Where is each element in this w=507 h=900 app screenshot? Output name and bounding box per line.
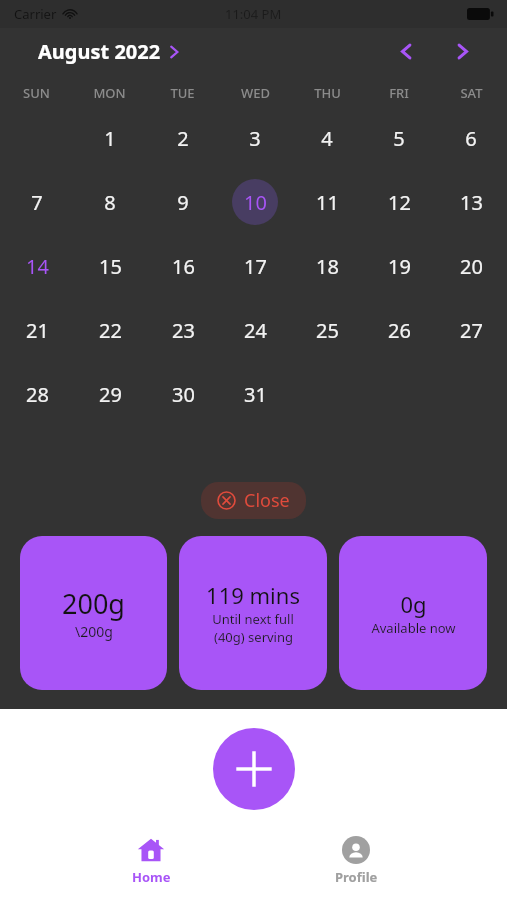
- staticText: 5: [393, 125, 405, 152]
- staticText: TUE: [170, 84, 195, 102]
- staticText: 22: [99, 317, 122, 344]
- staticText: 28: [26, 381, 49, 408]
- staticText: 8: [104, 189, 116, 216]
- staticText: 26: [388, 317, 411, 344]
- staticText: August 2022: [38, 38, 161, 65]
- staticText: (40g) serving: [214, 628, 293, 646]
- button[interactable]: 5: [376, 115, 422, 161]
- staticText: 25: [316, 317, 339, 344]
- staticText: WED: [241, 84, 270, 102]
- button[interactable]: 26: [376, 307, 422, 353]
- staticText: 14: [26, 253, 49, 280]
- staticText: 24: [244, 317, 267, 344]
- button[interactable]: Home: [96, 834, 206, 888]
- button[interactable]: 8: [87, 179, 133, 225]
- button[interactable]: 11: [304, 179, 350, 225]
- staticText: 17: [244, 253, 267, 280]
- staticText: 0g: [400, 589, 427, 619]
- button[interactable]: Next month: [445, 34, 479, 68]
- staticText: 19: [388, 253, 411, 280]
- button[interactable]: 6: [448, 115, 494, 161]
- button[interactable]: 23: [160, 307, 206, 353]
- staticText: 13: [460, 189, 483, 216]
- button[interactable]: 2: [160, 115, 206, 161]
- button[interactable]: Previous month: [389, 34, 423, 68]
- staticText: 6: [465, 125, 477, 152]
- staticText: 21: [26, 317, 49, 344]
- staticText: 31: [244, 381, 267, 408]
- staticText: SAT: [460, 84, 483, 102]
- button[interactable]: Profile: [301, 834, 411, 888]
- staticText: \200g: [75, 622, 113, 641]
- button[interactable]: 9: [160, 179, 206, 225]
- button[interactable]: 21: [14, 307, 60, 353]
- staticText: MON: [93, 84, 126, 102]
- button[interactable]: 3: [232, 115, 278, 161]
- button[interactable]: 19: [376, 243, 422, 289]
- staticText: Until next full: [212, 610, 294, 628]
- staticText: 2: [177, 125, 189, 152]
- button[interactable]: 7: [14, 179, 60, 225]
- button[interactable]: 10: [232, 179, 278, 225]
- button[interactable]: 119 mins: [179, 536, 327, 690]
- staticText: 10: [244, 189, 267, 216]
- staticText: Carrier: [14, 5, 57, 23]
- button[interactable]: 16: [160, 243, 206, 289]
- staticText: 27: [460, 317, 483, 344]
- staticText: 16: [172, 253, 195, 280]
- button[interactable]: 24: [232, 307, 278, 353]
- button[interactable]: Add: [213, 728, 295, 810]
- button[interactable]: 1: [87, 115, 133, 161]
- button[interactable]: 22: [87, 307, 133, 353]
- button[interactable]: 28: [14, 371, 60, 417]
- staticText: Available now: [371, 619, 456, 637]
- staticText: 15: [99, 253, 122, 280]
- staticText: 23: [172, 317, 195, 344]
- staticText: 7: [31, 189, 43, 216]
- button[interactable]: 4: [304, 115, 350, 161]
- button[interactable]: 30: [160, 371, 206, 417]
- staticText: 30: [172, 381, 195, 408]
- staticText: 3: [249, 125, 261, 152]
- staticText: 119 mins: [206, 580, 300, 610]
- button[interactable]: 20: [448, 243, 494, 289]
- staticText: Close: [244, 488, 290, 513]
- button[interactable]: 17: [232, 243, 278, 289]
- staticText: FRI: [389, 84, 409, 102]
- staticText: 12: [388, 189, 411, 216]
- staticText: 18: [316, 253, 339, 280]
- staticText: 11: [316, 189, 339, 216]
- button[interactable]: 18: [304, 243, 350, 289]
- staticText: Profile: [335, 868, 378, 886]
- button[interactable]: 29: [87, 371, 133, 417]
- staticText: Home: [132, 868, 171, 886]
- button[interactable]: 0g: [339, 536, 487, 690]
- staticText: SUN: [23, 84, 50, 102]
- button[interactable]: 13: [448, 179, 494, 225]
- button[interactable]: Close: [201, 482, 306, 519]
- staticText: 20: [460, 253, 483, 280]
- staticText: 200g: [62, 585, 125, 622]
- button[interactable]: 14: [14, 243, 60, 289]
- button[interactable]: 12: [376, 179, 422, 225]
- staticText: 4: [321, 125, 333, 152]
- staticText: 1: [104, 125, 116, 152]
- button[interactable]: 25: [304, 307, 350, 353]
- button[interactable]: 27: [448, 307, 494, 353]
- button[interactable]: 200g: [20, 536, 167, 690]
- staticText: THU: [314, 84, 341, 102]
- button[interactable]: 15: [87, 243, 133, 289]
- staticText: 9: [177, 189, 189, 216]
- button[interactable]: August 2022: [38, 38, 181, 65]
- staticText: 29: [99, 381, 122, 408]
- button[interactable]: 31: [232, 371, 278, 417]
- staticText: 11:04 PM: [225, 5, 282, 23]
